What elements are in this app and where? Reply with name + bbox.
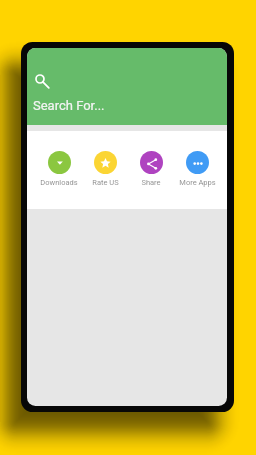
button[interactable]: Share	[128, 151, 174, 187]
staticText: Downloads	[40, 178, 78, 187]
button[interactable]: Search	[36, 75, 52, 91]
staticText: Share	[141, 178, 161, 187]
staticText: Search For...	[33, 98, 105, 113]
button[interactable]: Rate US	[82, 151, 128, 187]
button[interactable]: Downloads	[36, 151, 82, 187]
staticText: More Apps	[179, 178, 216, 187]
staticText: Rate US	[92, 178, 119, 187]
button[interactable]: More Apps	[174, 151, 220, 187]
